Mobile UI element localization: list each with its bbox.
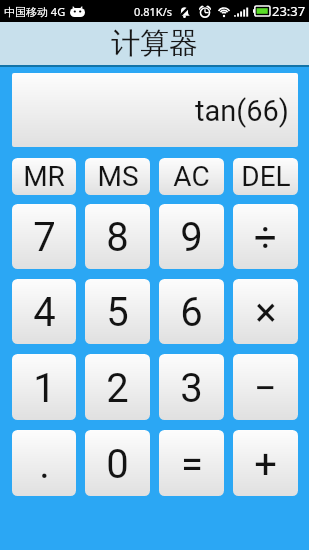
staticText: ÷ [254, 214, 277, 261]
button[interactable]: tan(66) [12, 73, 298, 147]
staticText: tan(66) [195, 94, 289, 128]
button[interactable]: + [233, 430, 298, 496]
button[interactable]: × [233, 279, 298, 344]
staticText: 9 [180, 214, 203, 261]
staticText: 3 [180, 365, 203, 412]
staticText: 0 [106, 441, 129, 488]
button[interactable]: AC [159, 158, 224, 195]
staticText: 计算器 [111, 25, 198, 62]
button[interactable]: 9 [159, 204, 224, 269]
staticText: 23:37 [272, 2, 306, 20]
button[interactable]: 5 [85, 279, 150, 344]
button[interactable]: 1 [12, 354, 76, 420]
staticText: 1 [33, 365, 56, 412]
button[interactable]: 4 [12, 279, 76, 344]
button[interactable]: 6 [159, 279, 224, 344]
staticText: 0.81K/s [134, 4, 172, 19]
staticText: 8 [106, 214, 129, 261]
button[interactable]: 7 [12, 204, 76, 269]
button[interactable]: ÷ [233, 204, 298, 269]
button[interactable]: − [233, 354, 298, 420]
button[interactable]: 8 [85, 204, 150, 269]
button[interactable]: 3 [159, 354, 224, 420]
staticText: 6 [180, 289, 203, 336]
button[interactable]: MS [85, 158, 150, 195]
button[interactable]: DEL [233, 158, 298, 195]
staticText: . [39, 441, 50, 488]
button[interactable]: = [159, 430, 224, 496]
staticText: 2 [106, 365, 129, 412]
staticText: = [181, 441, 203, 488]
staticText: 4 [33, 289, 56, 336]
staticText: + [254, 441, 277, 488]
staticText: 5 [106, 289, 129, 336]
staticText: × [255, 289, 277, 336]
staticText: DEL [241, 160, 291, 193]
staticText: MR [23, 160, 65, 193]
staticText: 中国移动 4G [4, 4, 66, 19]
staticText: MS [97, 160, 139, 193]
button[interactable]: MR [12, 158, 76, 195]
staticText: − [254, 365, 277, 412]
button[interactable]: . [12, 430, 76, 496]
button[interactable]: 2 [85, 354, 150, 420]
staticText: AC [173, 160, 210, 193]
button[interactable]: 0 [85, 430, 150, 496]
staticText: 7 [33, 214, 56, 261]
